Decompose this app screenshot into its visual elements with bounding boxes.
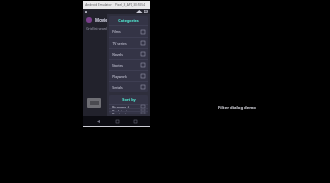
button[interactable]: Back xyxy=(94,117,102,125)
button[interactable]: Recents xyxy=(131,117,139,125)
staticText: By name ↑ xyxy=(112,105,130,108)
staticText: Stories xyxy=(112,63,123,68)
staticText: Playwork xyxy=(112,74,127,79)
button[interactable]: By name ↑ xyxy=(109,105,148,108)
other: Toggle xyxy=(141,63,145,67)
other: Toggle xyxy=(141,52,145,56)
button[interactable]: By date ↓ xyxy=(109,109,148,111)
button[interactable]: Novels xyxy=(109,49,148,59)
other: Toggle xyxy=(141,85,145,89)
staticText: Sort by xyxy=(122,97,136,102)
other: Toggle xyxy=(141,41,145,45)
button[interactable]: TV series xyxy=(109,38,148,48)
button[interactable]: By size ↓ xyxy=(109,112,148,114)
staticText: By date ↓ xyxy=(112,109,128,111)
other: Toggle xyxy=(141,105,145,108)
button[interactable]: Stories xyxy=(109,60,148,70)
button[interactable]: Home xyxy=(113,117,121,125)
other: Toggle xyxy=(141,74,145,78)
staticText: Films xyxy=(112,29,121,34)
staticText: Pixel_3_API_30:5554 xyxy=(115,3,145,7)
staticText: TV series xyxy=(112,41,127,46)
staticText: Serials xyxy=(112,85,123,90)
button[interactable]: Films xyxy=(109,26,148,37)
other: Toggle xyxy=(141,109,145,111)
staticText: By size ↓ xyxy=(112,112,127,114)
staticText: Filter dialog demo xyxy=(218,105,256,111)
staticText: Categories xyxy=(118,18,139,23)
staticText: Novels xyxy=(112,52,123,57)
button[interactable]: Serials xyxy=(109,82,148,92)
staticText: Grid list search ... xyxy=(86,27,112,31)
button[interactable]: Playwork xyxy=(109,71,148,81)
other: Toggle xyxy=(141,30,145,34)
other: Toggle xyxy=(141,112,145,114)
staticText: Android Emulator xyxy=(85,3,112,7)
staticText: Movies xyxy=(95,17,110,23)
